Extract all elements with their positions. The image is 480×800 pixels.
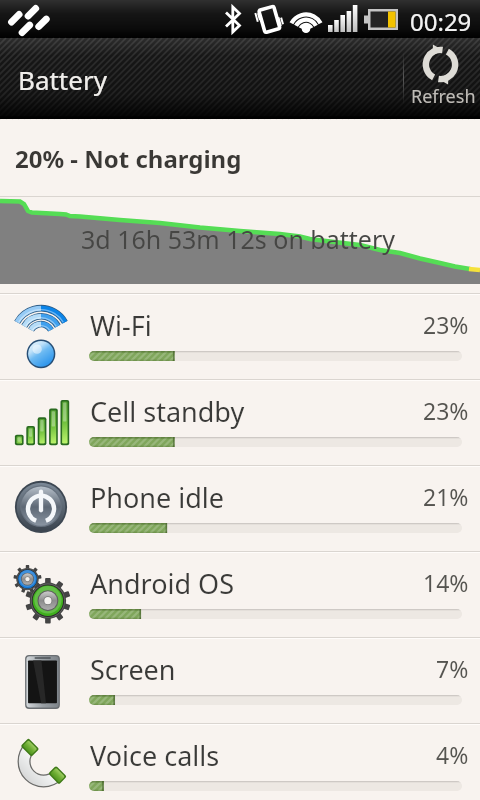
staticText: 7% xyxy=(436,653,469,684)
staticText: Screen xyxy=(90,651,176,688)
staticText: 23% xyxy=(423,309,469,340)
button[interactable]: Android OS xyxy=(0,551,480,637)
staticText: Phone idle xyxy=(90,479,225,516)
staticText: 21% xyxy=(423,481,469,512)
staticText: 00:29 xyxy=(410,5,472,38)
staticText: Cell standby xyxy=(90,393,245,430)
button[interactable]: Refresh xyxy=(403,38,480,119)
staticText: Wi-Fi xyxy=(90,307,152,344)
staticText: 23% xyxy=(423,395,469,426)
button[interactable]: Wi-Fi xyxy=(0,293,480,379)
staticText: 4% xyxy=(436,739,469,770)
button[interactable]: Phone idle xyxy=(0,465,480,551)
staticText: Refresh xyxy=(411,84,476,109)
button[interactable]: Cell standby xyxy=(0,379,480,465)
staticText: Battery xyxy=(18,62,107,97)
button[interactable]: Voice calls xyxy=(0,723,480,800)
staticText: 3d 16h 53m 12s on battery xyxy=(81,222,395,256)
staticText: 20% - Not charging xyxy=(15,142,242,175)
staticText: Android OS xyxy=(90,565,234,602)
button[interactable]: Screen xyxy=(0,637,480,723)
staticText: Voice calls xyxy=(90,737,220,774)
staticText: 14% xyxy=(423,567,469,598)
